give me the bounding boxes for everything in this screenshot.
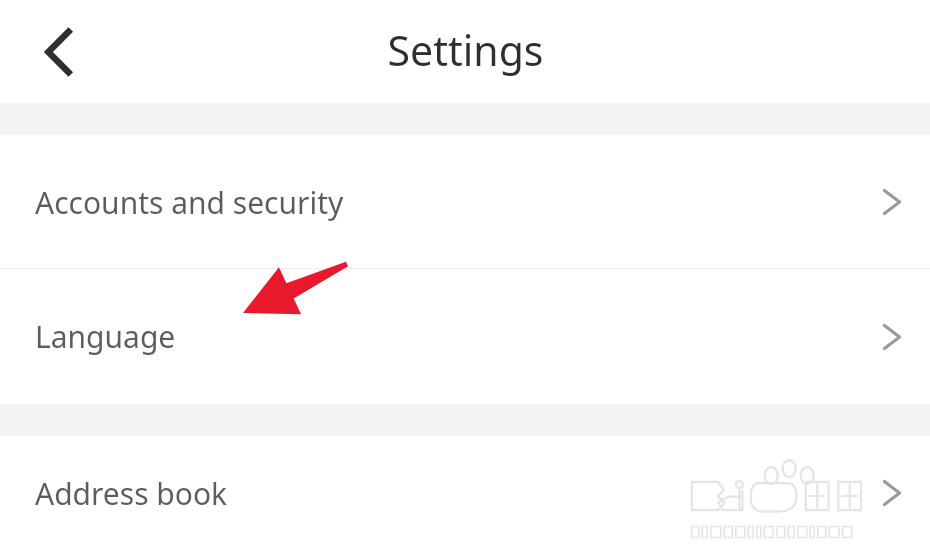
staticText: Language <box>35 316 176 357</box>
staticText: Accounts and security <box>35 182 344 223</box>
button[interactable]: Accounts and security <box>0 135 930 269</box>
staticText: Settings <box>387 22 544 78</box>
button[interactable]: Address book <box>0 436 930 550</box>
button[interactable]: Language <box>0 269 930 404</box>
button[interactable]: Back <box>30 23 88 81</box>
staticText: Address book <box>35 473 228 514</box>
